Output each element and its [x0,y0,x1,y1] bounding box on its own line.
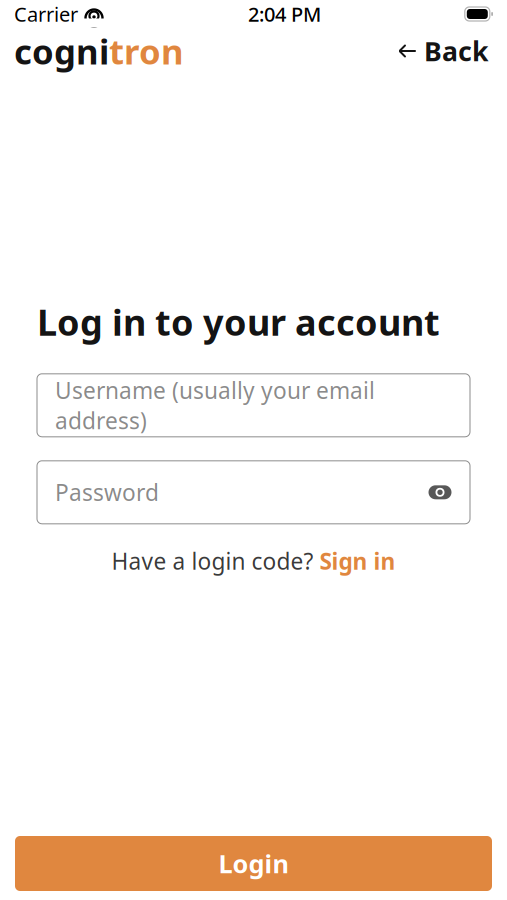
button[interactable]: Username (usually your email address) [37,374,470,437]
staticText: cogni [14,28,109,74]
staticText: Carrier [14,1,78,27]
button[interactable]: Back [394,27,493,75]
staticText: tron [109,28,184,74]
staticText: Have a login code? [111,546,319,576]
staticText: Password [55,477,159,507]
staticText: Back [424,33,489,69]
staticText: Username (usually your email address) [55,375,375,435]
staticText: 2:04 PM [248,1,321,27]
button[interactable]: Login [15,836,492,891]
staticText: Login [218,847,288,880]
button[interactable]: Sign in [319,546,395,576]
staticText: Log in to your account [37,298,440,346]
button[interactable]: Password [37,461,470,524]
staticText: Sign in [319,546,395,576]
